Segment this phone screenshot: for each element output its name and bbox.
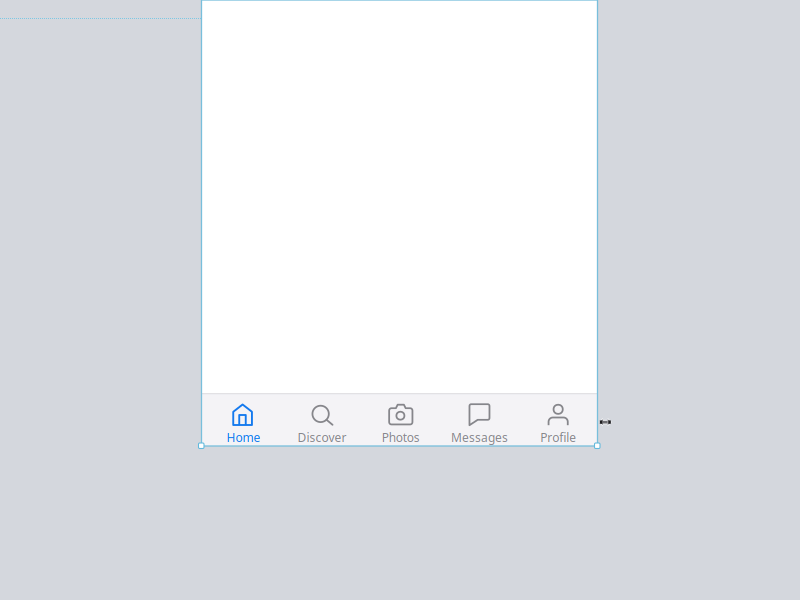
staticText: Profile [540,429,576,445]
button[interactable]: Messages [440,394,519,446]
button[interactable]: Profile [519,394,597,446]
staticText: Photos [382,429,420,445]
staticText: Messages [451,429,508,445]
button[interactable]: Photos [361,394,440,446]
staticText: Home [226,429,260,445]
button[interactable]: Home [204,394,283,446]
button[interactable]: Discover [283,394,361,446]
staticText: Discover [298,429,347,445]
